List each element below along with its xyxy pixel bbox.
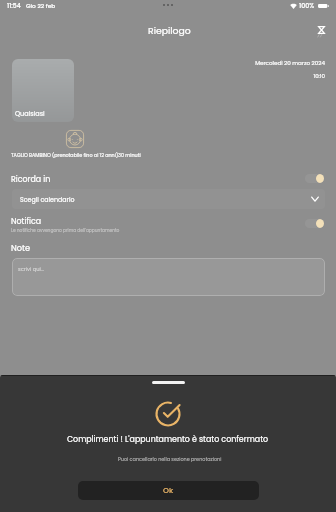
staticText: TAGLIO BAMBINO (prenotabile fino ai 12 a…: [11, 152, 141, 159]
button[interactable]: Attiva promemoria: [305, 174, 324, 183]
staticText: Scegli calendario: [20, 195, 75, 204]
staticText: 10:10: [195, 72, 325, 80]
staticText: Le notifiche avvengono prima dell'appunt…: [11, 227, 120, 233]
staticText: Puoi cancellarlo nella sezione prenotazi…: [118, 456, 222, 463]
button[interactable]: Cronologia: [311, 20, 331, 40]
staticText: Gio 22 feb: [26, 2, 56, 10]
staticText: 11:54: [7, 1, 21, 10]
staticText: Riepilogo: [148, 24, 191, 37]
button[interactable]: Ok: [78, 481, 259, 500]
staticText: Ricorda in: [11, 174, 51, 185]
staticText: Qualsiasi: [15, 109, 45, 118]
staticText: Complimenti ! L'appuntamento è stato con…: [67, 434, 269, 445]
staticText: scrivi qui...: [18, 266, 45, 273]
button[interactable]: scrivi qui...: [12, 258, 325, 296]
button[interactable]: Attiva notifica: [305, 219, 324, 228]
button[interactable]: Scegli calendario: [12, 189, 325, 209]
staticText: Ok: [163, 485, 174, 496]
staticText: 100%: [299, 1, 315, 10]
staticText: Mercoledì 20 marzo 2024: [195, 59, 325, 67]
button[interactable]: Qualsiasi: [12, 59, 74, 122]
staticText: Notifica: [11, 216, 42, 227]
staticText: Note: [11, 242, 31, 253]
